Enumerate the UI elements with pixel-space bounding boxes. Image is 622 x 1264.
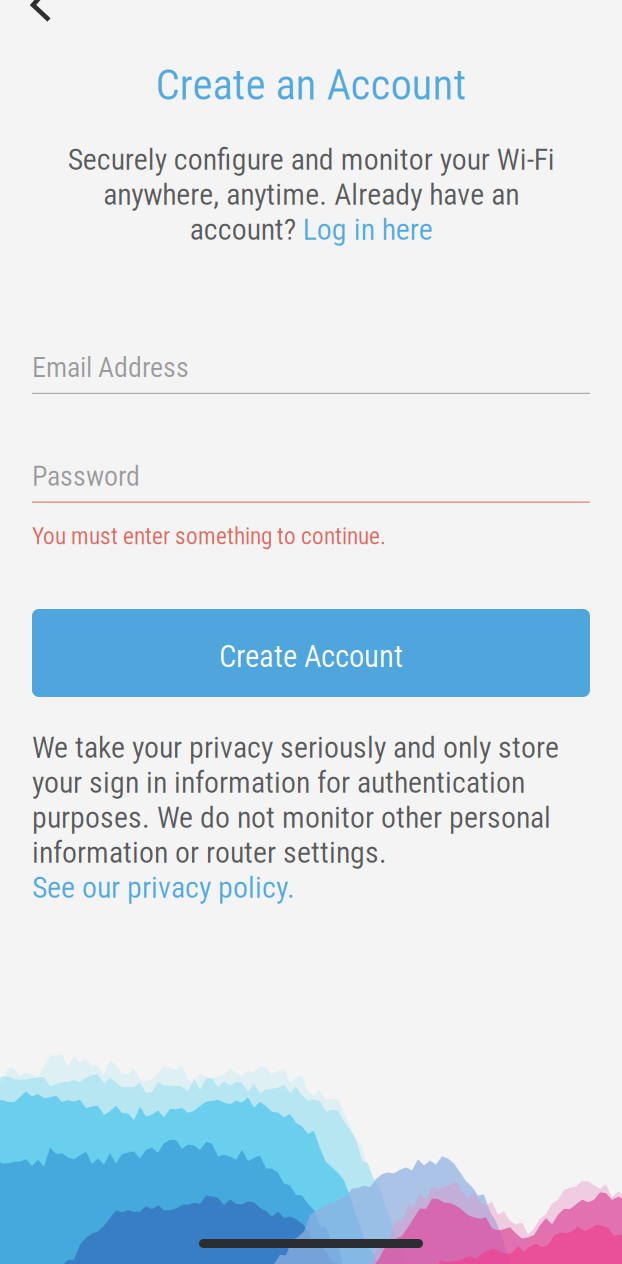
button[interactable]: See our privacy policy. [32,870,295,905]
staticText: Email Address [32,351,189,384]
staticText: You must enter something to continue. [32,523,386,550]
staticText: See our privacy policy. [32,870,295,905]
staticText: Password [32,460,140,493]
staticText: We take your privacy seriously and only … [32,730,559,870]
staticText: Create Account [219,638,403,674]
staticText: Securely configure and monitor your Wi-F… [67,142,554,247]
button[interactable]: Create Account [32,609,590,697]
staticText: Create an Account [155,60,466,110]
button[interactable]: Back [31,0,57,28]
